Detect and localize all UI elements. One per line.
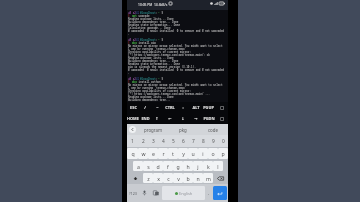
staticText: [*] https://packages.termux.org/apt/term…	[128, 53, 210, 56]
button[interactable]: pkg	[168, 124, 198, 135]
button[interactable]: 4	[158, 135, 168, 147]
staticText: Checking availability of current mirror:	[128, 89, 191, 92]
staticText: ~	[158, 38, 160, 41]
staticText: :	[156, 77, 158, 80]
staticText: o	[211, 150, 215, 157]
button[interactable]: PGUP	[202, 102, 215, 113]
staticText: m	[206, 175, 211, 182]
button[interactable]: t	[168, 148, 178, 159]
button[interactable]: a	[133, 161, 143, 171]
button[interactable]: Shift	[127, 172, 143, 184]
button[interactable]: i	[198, 148, 208, 159]
button[interactable]: Voice input	[139, 184, 150, 202]
button[interactable]: o	[208, 148, 218, 159]
button[interactable]: 7	[188, 135, 198, 147]
button[interactable]: u	[188, 148, 198, 159]
button[interactable]: :	[176, 102, 189, 113]
staticText: 41	[136, 11, 140, 14]
button[interactable]: w	[138, 148, 148, 159]
staticText: @localhost	[140, 77, 156, 80]
button[interactable]: program	[138, 124, 168, 135]
button[interactable]: l	[213, 161, 223, 171]
button[interactable]: ↑	[151, 113, 163, 124]
button[interactable]: f	[163, 161, 173, 171]
staticText: ↓	[181, 116, 185, 121]
staticText: Building dependency tree... Done	[128, 20, 179, 23]
button[interactable]: Stickers	[150, 184, 161, 202]
staticText: ESC	[130, 105, 137, 110]
button[interactable]: Backspace	[213, 172, 228, 184]
staticText: h	[186, 163, 190, 170]
button[interactable]: code	[198, 124, 228, 135]
button[interactable]: 5	[168, 135, 178, 147]
staticText: :	[156, 11, 158, 14]
staticText: pkg	[179, 127, 187, 133]
button[interactable]: HOME	[127, 113, 139, 124]
button[interactable]: ←	[163, 113, 176, 124]
button[interactable]: →	[189, 113, 202, 124]
button[interactable]: 9	[208, 135, 218, 147]
button[interactable]: □	[215, 102, 228, 113]
button[interactable]: 8	[198, 135, 208, 147]
staticText: $	[128, 41, 132, 44]
button[interactable]: k	[203, 161, 213, 171]
staticText: 10:05 PM 14.6kB/s	[138, 2, 168, 6]
staticText: w	[141, 150, 146, 157]
button[interactable]: p	[218, 148, 228, 159]
staticText: 5	[172, 138, 175, 145]
button[interactable]: 0	[218, 135, 228, 147]
button[interactable]: g	[173, 161, 183, 171]
button[interactable]: c	[163, 173, 173, 183]
staticText: y	[182, 150, 185, 157]
staticText: :	[182, 105, 184, 110]
button[interactable]: □	[215, 113, 228, 124]
button[interactable]: Enter	[213, 186, 227, 200]
button[interactable]: PGDN	[202, 113, 215, 124]
staticText: →	[194, 116, 198, 121]
button[interactable]: ESC	[127, 102, 139, 113]
button[interactable]: y	[178, 148, 188, 159]
button[interactable]: ALT	[189, 102, 202, 113]
staticText: .	[128, 71, 130, 74]
staticText: i	[202, 150, 204, 157]
staticText: −	[156, 105, 159, 110]
button[interactable]: ↓	[176, 113, 189, 124]
button[interactable]: /	[139, 102, 151, 113]
staticText: 0 upgraded, 0 newly installed, 0 to remo…	[128, 29, 225, 32]
button[interactable]: x	[153, 173, 163, 183]
button[interactable]: 1	[127, 135, 138, 147]
button[interactable]: b	[183, 173, 193, 183]
button[interactable]: CTRL	[163, 102, 176, 113]
button[interactable]: 6	[178, 135, 188, 147]
staticText: $	[160, 38, 164, 41]
staticText: Building dependency tree...	[128, 98, 171, 101]
staticText: Reading state information... Done	[128, 23, 180, 26]
button[interactable]: English	[162, 186, 205, 200]
staticText: u0_a2	[128, 11, 136, 14]
button[interactable]: v	[173, 173, 183, 183]
staticText: No mirror or mirror group selected. You …	[128, 44, 223, 47]
button[interactable]: END	[139, 113, 151, 124]
button[interactable]: ?123	[127, 184, 139, 202]
button[interactable]: e	[148, 148, 158, 159]
button[interactable]: 3	[148, 135, 158, 147]
button[interactable]: s	[143, 161, 153, 171]
button[interactable]: j	[193, 161, 203, 171]
staticText: ALT	[192, 105, 200, 110]
button[interactable]: d	[153, 161, 163, 171]
button[interactable]: z	[143, 173, 153, 183]
staticText: HOME	[127, 116, 139, 121]
button[interactable]: Previous suggestions	[127, 124, 138, 135]
button[interactable]: m	[203, 173, 213, 183]
staticText: pkg	[132, 41, 137, 44]
staticText: j	[197, 163, 199, 170]
button[interactable]: r	[158, 148, 168, 159]
button[interactable]: h	[183, 161, 193, 171]
button[interactable]: n	[193, 173, 203, 183]
button[interactable]: .	[206, 184, 212, 202]
button[interactable]: 2	[138, 135, 148, 147]
button[interactable]: q	[127, 148, 138, 159]
button[interactable]: −	[151, 102, 163, 113]
staticText: 8	[202, 138, 205, 145]
staticText: t	[172, 150, 174, 157]
